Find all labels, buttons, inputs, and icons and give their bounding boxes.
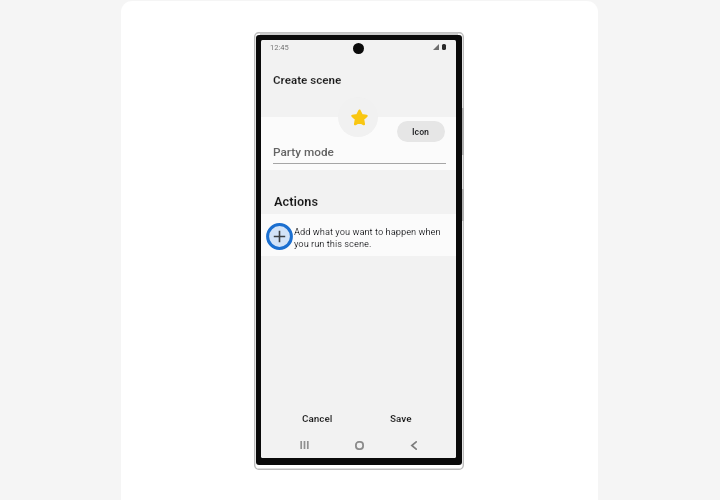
staticText: 12:45 bbox=[270, 43, 289, 52]
staticText: Save bbox=[390, 413, 412, 425]
button[interactable]: Save bbox=[383, 410, 419, 428]
staticText: Icon bbox=[412, 127, 430, 137]
button[interactable]: Scene name bbox=[273, 141, 446, 164]
staticText: Add what you want to happen when you run… bbox=[294, 226, 450, 249]
button[interactable]: Home bbox=[350, 435, 368, 455]
staticText: Party mode bbox=[273, 145, 334, 159]
staticText: Create scene bbox=[273, 73, 342, 87]
button[interactable]: Recents bbox=[295, 435, 313, 455]
button[interactable]: Back bbox=[405, 435, 423, 455]
button[interactable]: Cancel bbox=[295, 410, 339, 428]
staticText: Cancel bbox=[302, 413, 333, 425]
button[interactable]: Icon bbox=[397, 121, 445, 142]
staticText: Actions bbox=[274, 194, 318, 209]
button[interactable]: Add what you want to happen when you run… bbox=[261, 214, 456, 256]
button[interactable]: Change scene icon bbox=[338, 97, 378, 137]
